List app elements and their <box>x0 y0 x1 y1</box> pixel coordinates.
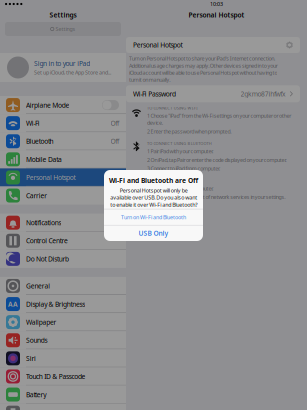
staticText: Airplane Mode <box>26 101 69 109</box>
staticText: 2 Enter the password when prompted. <box>147 128 231 135</box>
staticText: Touch ID & Passcode <box>26 372 86 381</box>
staticText: Turn on Personal Hotspot to share your i… <box>129 55 278 83</box>
staticText: Settings <box>55 25 75 33</box>
button[interactable]: Wi-Fi <box>0 114 126 132</box>
staticText: TO CONNECT USING BLUETOOTH <box>147 141 212 146</box>
button[interactable]: Personal Hotspot <box>0 168 126 186</box>
staticText: General <box>26 281 50 290</box>
staticText: Off <box>111 119 119 128</box>
staticText: AA <box>8 300 18 308</box>
button[interactable]: Battery <box>0 385 126 404</box>
staticText: 3 Connect to iPad from computer. <box>147 165 220 172</box>
button[interactable]: Siri <box>0 349 126 367</box>
staticText: 1 Choose "iPad" from the Wi-Fi settings … <box>147 112 291 126</box>
staticText: Sounds <box>26 336 47 345</box>
button[interactable]: Control Centre <box>0 232 126 250</box>
staticText: Carrier <box>26 191 47 200</box>
button[interactable]: Notifications <box>0 214 126 232</box>
button[interactable]: General <box>0 277 126 295</box>
button[interactable]: USB Only <box>104 225 203 241</box>
staticText: Do Not Disturb <box>26 254 69 263</box>
staticText: Settings <box>49 11 76 19</box>
staticText: 2 On iPad, tap Pair or enter the code di… <box>147 156 286 163</box>
button[interactable]: Airplane Mode <box>0 96 126 114</box>
staticText: Control Centre <box>26 236 68 245</box>
staticText: 10:03 <box>210 0 223 8</box>
staticText: 2 Choose iPad from the list of network s… <box>147 193 285 200</box>
staticText: USB Only <box>138 229 168 238</box>
staticText: Notifications <box>26 218 61 227</box>
staticText: Turn on Wi-Fi and Bluetooth <box>121 214 186 221</box>
staticText: Battery <box>26 390 46 399</box>
staticText: 1 Plug iPad into your computer. <box>147 185 213 192</box>
button[interactable]: Turn on Wi-Fi and Bluetooth <box>104 209 203 225</box>
staticText: Wi-Fi Password <box>133 89 176 98</box>
button[interactable]: Wi-Fi Password <box>126 85 307 102</box>
button[interactable]: Touch ID & Passcode <box>0 367 126 385</box>
button[interactable]: Wallpaper <box>0 313 126 331</box>
staticText: Sign in to your iPad <box>34 59 90 68</box>
staticText: Set up iCloud, the App Store and... <box>34 69 111 76</box>
staticText: Siri <box>26 354 36 363</box>
button[interactable]: Do Not Disturb <box>0 250 126 268</box>
staticText: Personal Hotspot will only be available … <box>110 187 197 208</box>
staticText: Wi-Fi <box>26 119 40 128</box>
button[interactable]: Sounds <box>0 331 126 349</box>
button[interactable]: AA <box>0 295 126 313</box>
staticText: 2gkmo87ihfwfx <box>241 89 286 98</box>
staticText: TO CONNECT USING USB <box>147 178 196 183</box>
staticText: Wallpaper <box>26 318 57 327</box>
button[interactable]: Sign in to your iPad <box>0 53 126 82</box>
staticText: Personal Hotspot <box>26 173 75 182</box>
staticText: TO CONNECT USING WI-FI <box>147 105 197 111</box>
staticText: Wi-Fi and Bluetooth are Off <box>109 176 198 185</box>
staticText: Mobile Data <box>26 155 62 164</box>
staticText: Off <box>111 137 119 146</box>
staticText: Personal Hotspot <box>133 41 182 49</box>
button[interactable]: Privacy <box>0 404 126 410</box>
staticText: 1 Pair iPad with your computer. <box>147 148 213 155</box>
button[interactable]: Carrier <box>0 186 126 205</box>
button[interactable]: Mobile Data <box>0 150 126 168</box>
staticText: Display & Brightness <box>26 300 85 308</box>
staticText: Bluetooth <box>26 137 54 146</box>
staticText: Personal Hotspot <box>188 11 244 19</box>
button[interactable]: Bluetooth <box>0 132 126 150</box>
